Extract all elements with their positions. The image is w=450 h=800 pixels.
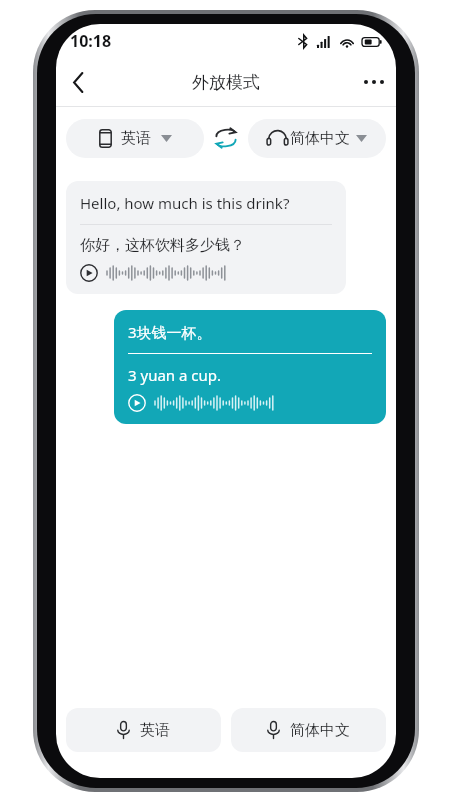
button[interactable]: 简体中文 — [231, 708, 386, 752]
staticText: 3块钱一杯。 — [128, 322, 212, 342]
button[interactable]: Back — [56, 60, 100, 104]
staticText: 外放模式 — [192, 72, 260, 93]
button[interactable]: Swap languages — [204, 116, 248, 160]
staticText: 简体中文 — [290, 129, 350, 148]
staticText: 3 yuan a cup. — [128, 365, 222, 385]
button[interactable]: More options — [352, 60, 396, 104]
staticText: 英语 — [140, 721, 170, 740]
staticText: 10:18 — [70, 30, 112, 52]
button[interactable]: 英语 — [66, 119, 204, 158]
button[interactable]: 英语 — [66, 708, 221, 752]
button[interactable]: Play audio — [80, 264, 225, 282]
staticText: 你好，这杯饮料多少钱？ — [80, 236, 245, 255]
staticText: 简体中文 — [290, 721, 350, 740]
staticText: Hello, how much is this drink? — [80, 193, 290, 213]
button[interactable]: Hello, how much is this drink? — [66, 181, 346, 294]
button[interactable]: Play audio — [128, 394, 273, 412]
button[interactable]: 3块钱一杯。 — [114, 310, 386, 424]
staticText: 英语 — [121, 129, 151, 148]
button[interactable]: 简体中文 — [248, 119, 386, 158]
